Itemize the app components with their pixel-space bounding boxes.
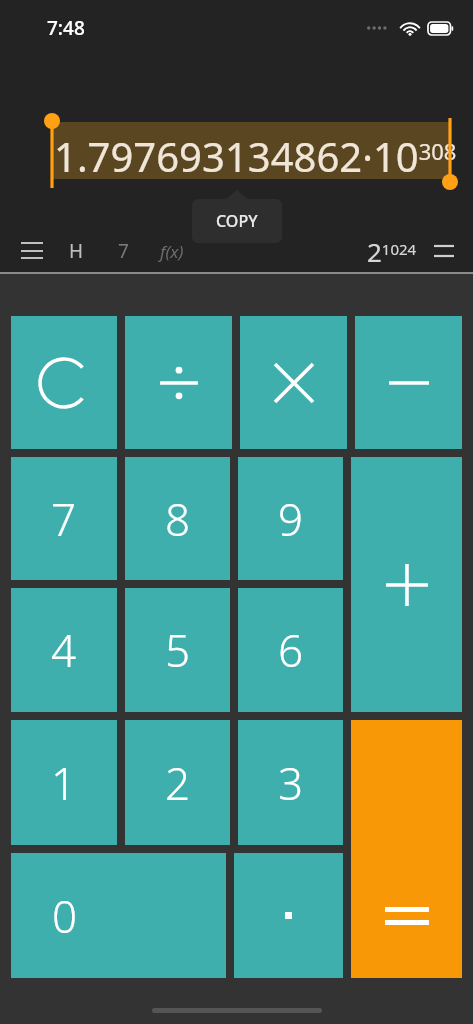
staticText: COPY [216,210,258,232]
button[interactable]: 4 [11,588,117,712]
button[interactable]: 2 [125,720,230,845]
staticText: f(x) [160,240,184,263]
button[interactable]: Minus [355,316,462,449]
button[interactable]: Equals mode [427,234,461,268]
staticText: 6 [278,620,304,680]
button[interactable]: Divide [125,316,232,449]
staticText: 4 [51,620,77,680]
button[interactable]: Equals [351,720,462,978]
button[interactable]: 0 [11,853,226,978]
button[interactable]: 5 [125,588,230,712]
button[interactable]: 6 [238,588,343,712]
button[interactable]: 8 [125,457,230,580]
staticText: 2 [165,753,191,813]
staticText: 5 [165,620,191,680]
button[interactable]: Decimal point [234,853,343,978]
staticText: 7 [118,238,129,264]
button[interactable]: 1 [11,720,117,845]
button[interactable]: Menu [12,231,52,271]
staticText: 0 [52,886,78,946]
button[interactable]: 3 [238,720,343,845]
button[interactable]: 7 [100,231,146,271]
button[interactable]: Plus [351,457,462,712]
button[interactable]: H [52,231,100,271]
staticText: 1.797693134862·10308 [54,129,457,183]
button[interactable]: f(x) [146,231,198,271]
button[interactable]: Multiply [240,316,347,449]
staticText: 3 [278,753,304,813]
staticText: H [69,238,84,264]
staticText: 1 [51,753,77,813]
staticText: 7 [51,489,77,549]
staticText: 7:48 [47,15,85,41]
button[interactable]: 7 [11,457,117,580]
staticText: 9 [278,489,304,549]
staticText: 8 [165,489,191,549]
button[interactable]: 21024 [367,231,417,271]
button[interactable]: Clear [11,316,117,449]
button[interactable]: COPY [192,199,282,243]
button[interactable]: 9 [238,457,343,580]
staticText: 21024 [367,234,417,269]
